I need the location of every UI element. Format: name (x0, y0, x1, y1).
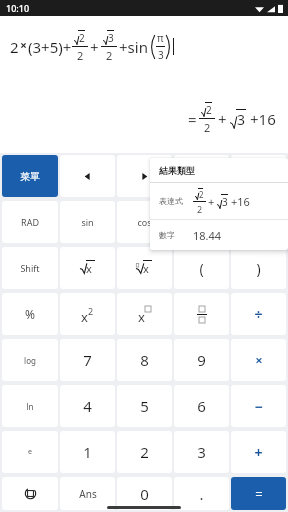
button[interactable]: Fraction (174, 293, 229, 335)
staticText: 數字 (159, 230, 193, 240)
staticText: x (143, 261, 149, 276)
staticText: 4 (83, 396, 92, 416)
staticText: − (254, 397, 263, 416)
button[interactable]: ) (231, 247, 286, 289)
button[interactable]: = (231, 477, 286, 510)
button[interactable]: RAD (2, 201, 58, 243)
button[interactable]: e (2, 431, 58, 473)
button[interactable]: Move cursor right (117, 155, 172, 197)
button[interactable]: × (231, 339, 286, 381)
button[interactable]: Nth root (117, 247, 172, 289)
button[interactable]: 4 (60, 385, 115, 427)
button[interactable]: 0 (117, 477, 172, 510)
button[interactable]: Move cursor left (60, 155, 115, 197)
staticText: 2 (199, 189, 204, 200)
button[interactable]: % (2, 293, 58, 335)
staticText: 2 (206, 103, 212, 117)
staticText: 7 (83, 350, 92, 370)
staticText: ÷ (254, 305, 263, 324)
staticText: + (254, 443, 263, 462)
button[interactable]: 表達式 (150, 183, 288, 219)
staticText: x (81, 308, 88, 326)
button[interactable]: sin (60, 201, 115, 243)
staticText: π (157, 31, 164, 45)
staticText: + (208, 194, 215, 209)
staticText: 9 (197, 350, 206, 370)
staticText: RAD (21, 216, 39, 228)
staticText: 2 (10, 37, 19, 57)
button[interactable]: 5 (117, 385, 172, 427)
staticText: 菜單 (20, 170, 40, 183)
staticText: 2 (204, 120, 211, 135)
button[interactable]: Rotate screen (2, 477, 58, 510)
staticText: 10:10 (6, 2, 30, 14)
button[interactable]: Square root (60, 247, 115, 289)
staticText: 表達式 (159, 196, 193, 206)
staticText: 結果類型 (159, 165, 195, 176)
staticText: + (218, 109, 227, 129)
staticText: = (188, 109, 197, 129)
button[interactable]: 菜單 (2, 155, 58, 197)
button[interactable]: Square (60, 293, 115, 335)
staticText: 2 (88, 305, 94, 317)
button[interactable]: Ans (60, 477, 115, 510)
staticText: 2 (197, 203, 203, 215)
button[interactable]: ( (174, 247, 229, 289)
staticText: x (138, 308, 145, 326)
button[interactable]: 數字 (150, 220, 288, 250)
staticText: +16 (231, 194, 250, 209)
button[interactable]: cos (117, 201, 172, 243)
staticText: 3 (222, 195, 228, 209)
staticText: + (90, 37, 99, 57)
button[interactable]: 9 (174, 339, 229, 381)
staticText: e (28, 447, 32, 457)
staticText: 2 (79, 31, 85, 45)
staticText: 2 (140, 442, 149, 462)
staticText: 3 (197, 442, 206, 462)
button[interactable] (174, 155, 229, 197)
button[interactable]: tan (174, 201, 229, 243)
button[interactable]: Delete (231, 201, 286, 243)
button[interactable] (231, 155, 286, 197)
button[interactable]: 1 (60, 431, 115, 473)
button[interactable]: ln (2, 385, 58, 427)
staticText: Ans (79, 487, 97, 501)
button[interactable]: 6 (174, 385, 229, 427)
button[interactable]: 7 (60, 339, 115, 381)
staticText: 3 (237, 110, 246, 129)
button[interactable]: log (2, 339, 58, 381)
button[interactable]: + (231, 431, 286, 473)
staticText: 0 (140, 484, 149, 504)
staticText: 2 (77, 48, 84, 63)
staticText: ) (256, 259, 261, 278)
button[interactable]: 3 (174, 431, 229, 473)
staticText: log (24, 355, 36, 366)
staticText: 6 (197, 396, 206, 416)
staticText: = (255, 485, 263, 503)
staticText: 5 (140, 396, 149, 416)
button[interactable]: Shift (2, 247, 58, 289)
staticText: x (86, 261, 92, 276)
staticText: 3 (108, 31, 114, 45)
staticText: Shift (20, 262, 40, 274)
button[interactable]: 2 (117, 431, 172, 473)
button[interactable]: . (174, 477, 229, 510)
staticText: +sin (119, 37, 148, 57)
staticText: . (199, 484, 204, 504)
button[interactable]: 8 (117, 339, 172, 381)
button[interactable]: ÷ (231, 293, 286, 335)
staticText: sin (81, 216, 94, 228)
button[interactable]: Power (117, 293, 172, 335)
staticText: 2 (106, 48, 113, 63)
staticText: (3+5)+ (28, 37, 72, 57)
staticText: 1 (83, 442, 92, 462)
staticText: 18.44 (193, 228, 222, 243)
staticText: tan (195, 216, 209, 228)
staticText: % (25, 306, 35, 322)
button[interactable]: − (231, 385, 286, 427)
staticText: cos (137, 216, 152, 228)
staticText: × (255, 351, 263, 369)
staticText: ( (199, 259, 204, 278)
staticText: +16 (250, 109, 276, 129)
staticText: 8 (140, 350, 149, 370)
